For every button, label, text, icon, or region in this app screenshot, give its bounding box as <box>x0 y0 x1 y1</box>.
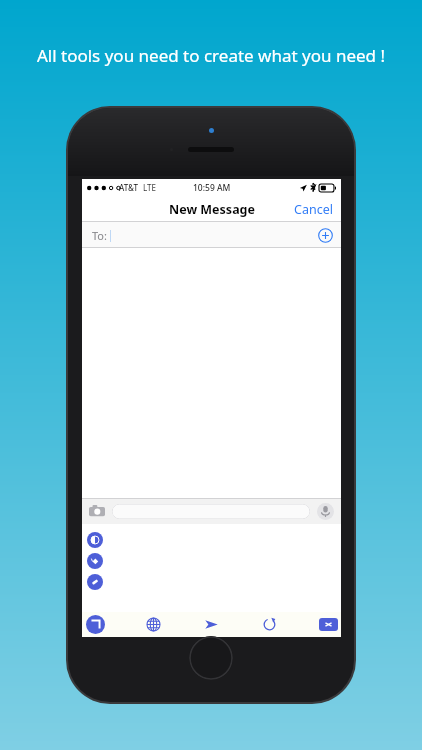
button[interactable]: Send <box>203 616 220 633</box>
button[interactable]: Camera <box>89 503 105 519</box>
button[interactable]: Add contact <box>318 228 333 243</box>
staticText: LTE <box>143 182 156 193</box>
button[interactable]: Cancel <box>286 197 341 222</box>
button[interactable] <box>112 504 310 519</box>
button[interactable]: Eraser <box>87 574 103 590</box>
button[interactable]: Voice message <box>317 503 334 520</box>
button[interactable]: Globe <box>145 616 162 633</box>
staticText: All tools you need to create what you ne… <box>0 44 422 67</box>
staticText: AT&T <box>119 182 138 193</box>
button[interactable]: Contrast <box>87 532 103 548</box>
button[interactable]: Delete <box>319 618 338 631</box>
button[interactable]: Undo <box>86 615 105 634</box>
staticText: Cancel <box>294 201 333 218</box>
button[interactable]: Home <box>189 636 233 680</box>
button[interactable]: To: <box>82 222 341 248</box>
button[interactable]: Refresh <box>261 616 278 633</box>
staticText: New Message <box>169 201 255 218</box>
staticText: To: <box>92 228 107 243</box>
button[interactable]: Fill <box>87 553 103 569</box>
staticText: 10:59 AM <box>193 182 231 194</box>
